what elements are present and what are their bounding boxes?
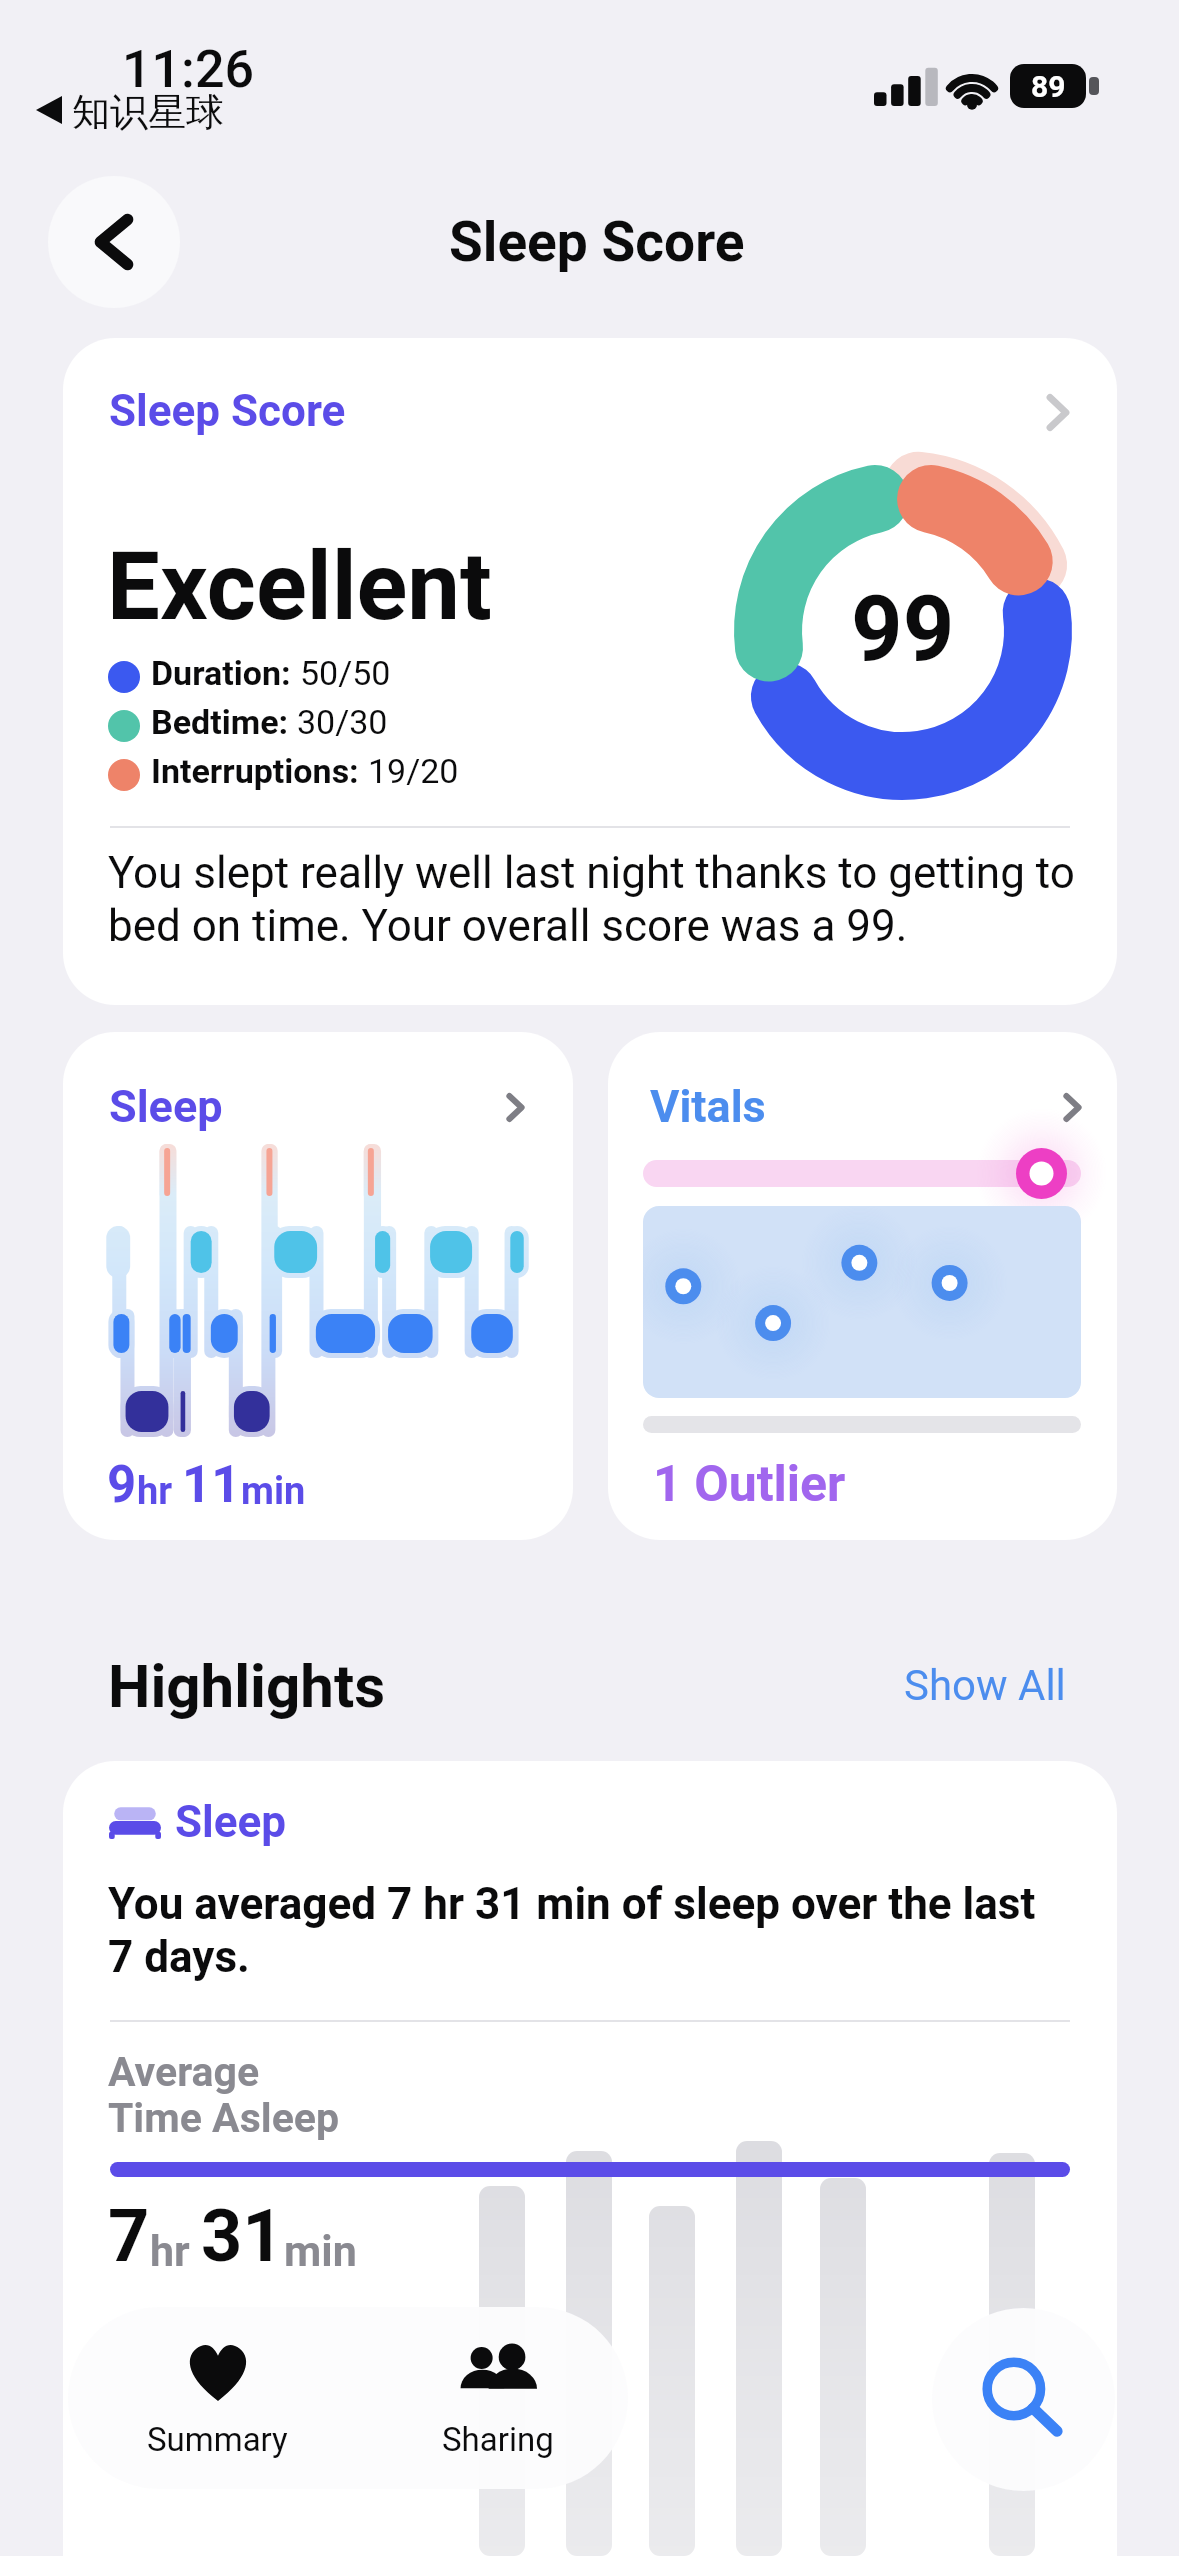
- staticText: min: [284, 2226, 357, 2276]
- staticText: 99: [851, 577, 955, 682]
- staticText: hr: [150, 2226, 201, 2276]
- button[interactable]: Search: [932, 2308, 1115, 2491]
- staticText: 9: [107, 1455, 137, 1515]
- staticText: Vitals: [650, 1080, 766, 1133]
- staticText: Time Asleep: [108, 2094, 340, 2142]
- button[interactable]: Sleep Score: [63, 338, 1117, 1005]
- staticText: Sharing: [442, 2420, 554, 2459]
- staticText: 1 Outlier: [653, 1455, 846, 1514]
- staticText: 11: [182, 1455, 241, 1515]
- staticText: Highlights: [108, 1651, 386, 1721]
- button[interactable]: Sleep: [63, 1761, 1117, 2556]
- staticText: 7: [108, 2194, 150, 2278]
- button[interactable]: Show All: [904, 1661, 1066, 1710]
- staticText: Sleep Score: [449, 210, 745, 274]
- staticText: Show All: [904, 1661, 1066, 1710]
- staticText: Duration:: [151, 653, 300, 693]
- staticText: Sleep: [175, 1796, 287, 1848]
- button[interactable]: Sleep: [63, 1032, 573, 1540]
- staticText: Interruptions:: [151, 751, 368, 791]
- staticText: min: [241, 1469, 306, 1514]
- staticText: 89: [1031, 69, 1066, 104]
- staticText: You slept really well last night thanks …: [108, 847, 1093, 952]
- staticText: Summary: [147, 2420, 288, 2459]
- button[interactable]: Sharing: [367, 2307, 628, 2489]
- staticText: 11:26: [122, 39, 255, 100]
- staticText: Sleep Score: [109, 385, 346, 437]
- staticText: 50/50: [300, 653, 391, 693]
- staticText: You averaged 7 hr 31 min of sleep over t…: [108, 1878, 1053, 1983]
- staticText: Average: [108, 2048, 260, 2096]
- staticText: Bedtime:: [151, 702, 297, 742]
- button[interactable]: Summary: [68, 2307, 367, 2489]
- staticText: 19/20: [368, 751, 459, 791]
- staticText: hr: [137, 1469, 182, 1514]
- staticText: Excellent: [107, 532, 492, 642]
- staticText: 31: [201, 2194, 284, 2278]
- button[interactable]: Back: [48, 176, 180, 308]
- staticText: 知识星球: [72, 88, 224, 136]
- button[interactable]: Vitals: [608, 1032, 1117, 1540]
- staticText: 30/30: [297, 702, 388, 742]
- staticText: Sleep: [109, 1080, 223, 1133]
